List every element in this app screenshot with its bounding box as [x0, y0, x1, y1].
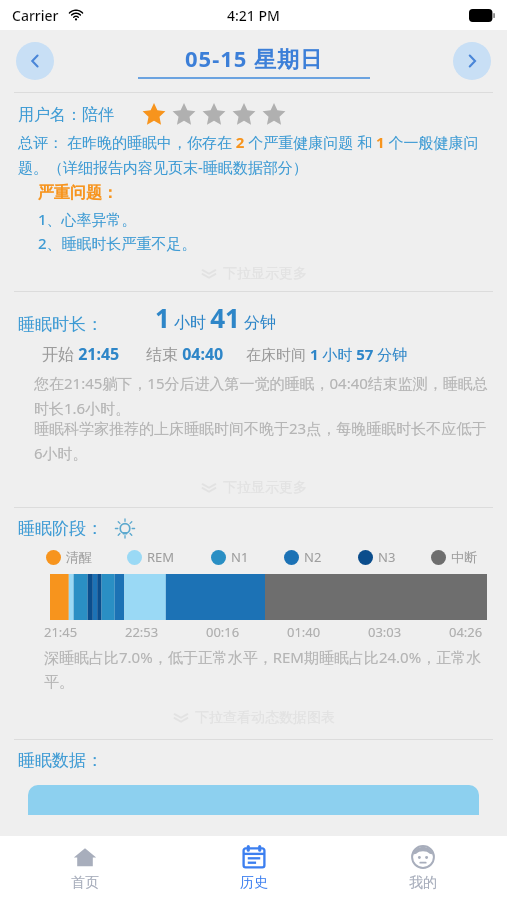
staticText: 1、心率异常。 — [38, 209, 137, 229]
button[interactable]: Next day — [453, 42, 491, 80]
staticText: 下拉显示更多 — [223, 265, 307, 283]
staticText: 开始 21:45 — [42, 343, 120, 365]
staticText: 结束 04:40 — [146, 343, 224, 365]
button[interactable]: Previous day — [16, 42, 54, 80]
button[interactable]: 首页 — [0, 836, 169, 900]
staticText: 4:21 PM — [227, 6, 280, 25]
staticText: Carrier — [12, 6, 59, 25]
staticText: 深睡眠占比7.0%，低于正常水平，REM期睡眠占比24.0%，正常水平。 — [44, 647, 489, 691]
staticText: REM — [147, 548, 175, 566]
staticText: 21:45 — [44, 623, 78, 641]
button[interactable]: 我的 — [338, 836, 507, 900]
staticText: N3 — [378, 548, 396, 566]
staticText: 我的 — [409, 874, 437, 892]
staticText: 睡眠数据： — [18, 750, 103, 771]
button[interactable] — [28, 785, 479, 815]
staticText: 首页 — [71, 874, 99, 892]
staticText: 22:53 — [125, 623, 159, 641]
staticText: 下拉查看动态数据图表 — [195, 709, 335, 727]
staticText: 04:26 — [449, 623, 483, 641]
staticText: 03:03 — [368, 623, 402, 641]
staticText: 历史 — [240, 874, 268, 892]
staticText: 05-15 星期日 — [185, 43, 324, 73]
staticText: 睡眠时长： — [18, 314, 103, 335]
staticText: 2、睡眠时长严重不足。 — [38, 233, 197, 253]
staticText: 睡眠科学家推荐的上床睡眠时间不晚于23点，每晚睡眠时长不应低于6小时。 — [34, 418, 489, 463]
staticText: 您在21:45躺下，15分后进入第一觉的睡眠，04:40结束监测，睡眠总时长1.… — [34, 373, 489, 418]
staticText: 中断 — [451, 549, 477, 565]
staticText: 1 小时 41 分钟 — [155, 300, 277, 335]
staticText: 用户名：陪伴 — [18, 105, 114, 125]
staticText: 01:40 — [287, 623, 321, 641]
staticText: 下拉显示更多 — [223, 479, 307, 497]
staticText: 清醒 — [66, 549, 92, 565]
button[interactable]: 历史 — [169, 836, 338, 900]
staticText: 睡眠阶段： — [18, 518, 103, 539]
staticText: N1 — [231, 548, 249, 566]
staticText: 总评： 在昨晚的睡眠中，你存在 2 个严重健康问题 和 1 个一般健康问题。（详… — [18, 132, 489, 177]
staticText: 严重问题： — [38, 183, 118, 203]
staticText: 在床时间 1 小时 57 分钟 — [246, 344, 408, 364]
staticText: 00:16 — [206, 623, 240, 641]
staticText: N2 — [304, 548, 322, 566]
